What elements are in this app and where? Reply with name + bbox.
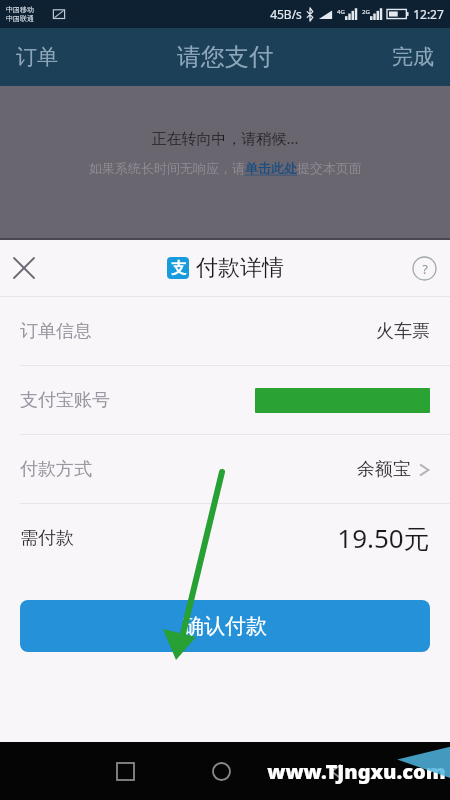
staticText: 订单 (16, 44, 58, 70)
button[interactable]: Help (399, 245, 450, 292)
staticText: 2G (362, 8, 370, 16)
staticText: 如果系统长时间无响应，请 (89, 160, 245, 176)
staticText: 完成 (392, 44, 434, 70)
button[interactable]: Back (319, 754, 354, 789)
staticText: 付款方式 (20, 458, 92, 481)
staticText: 支 (171, 259, 186, 278)
button[interactable]: 付款方式 (0, 435, 450, 503)
staticText: 订单信息 (20, 320, 92, 343)
staticText: 付款详情 (196, 254, 284, 282)
staticText: 正在转向中，请稍候... (151, 128, 299, 148)
button[interactable]: 完成 (376, 32, 450, 82)
staticText: 请您支付 (177, 42, 273, 72)
staticText: 45B/s (270, 6, 302, 22)
button[interactable]: 单击此处 (245, 160, 297, 176)
staticText: 提交本页面 (297, 160, 362, 176)
staticText: www.TJngxu.com (267, 758, 446, 785)
staticText: 需付款 (20, 527, 74, 550)
button[interactable]: Close (0, 246, 48, 290)
button[interactable]: 订单 (0, 32, 74, 82)
staticText: 19.50元 (337, 520, 430, 556)
staticText: 确认付款 (183, 613, 267, 639)
staticText: 余额宝 (357, 458, 411, 481)
staticText: 中国联通 (6, 14, 34, 23)
staticText: 火车票 (376, 320, 430, 343)
button[interactable]: Home (204, 754, 239, 789)
staticText: 单击此处 (245, 160, 297, 176)
button[interactable]: Recent apps (108, 754, 143, 789)
staticText: ? (422, 260, 428, 278)
button[interactable]: 确认付款 (20, 600, 430, 652)
staticText: 12:27 (413, 6, 444, 22)
staticText: 支付宝账号 (20, 389, 110, 412)
staticText: 中国移动 (6, 5, 34, 14)
staticText: 4G (337, 8, 345, 16)
